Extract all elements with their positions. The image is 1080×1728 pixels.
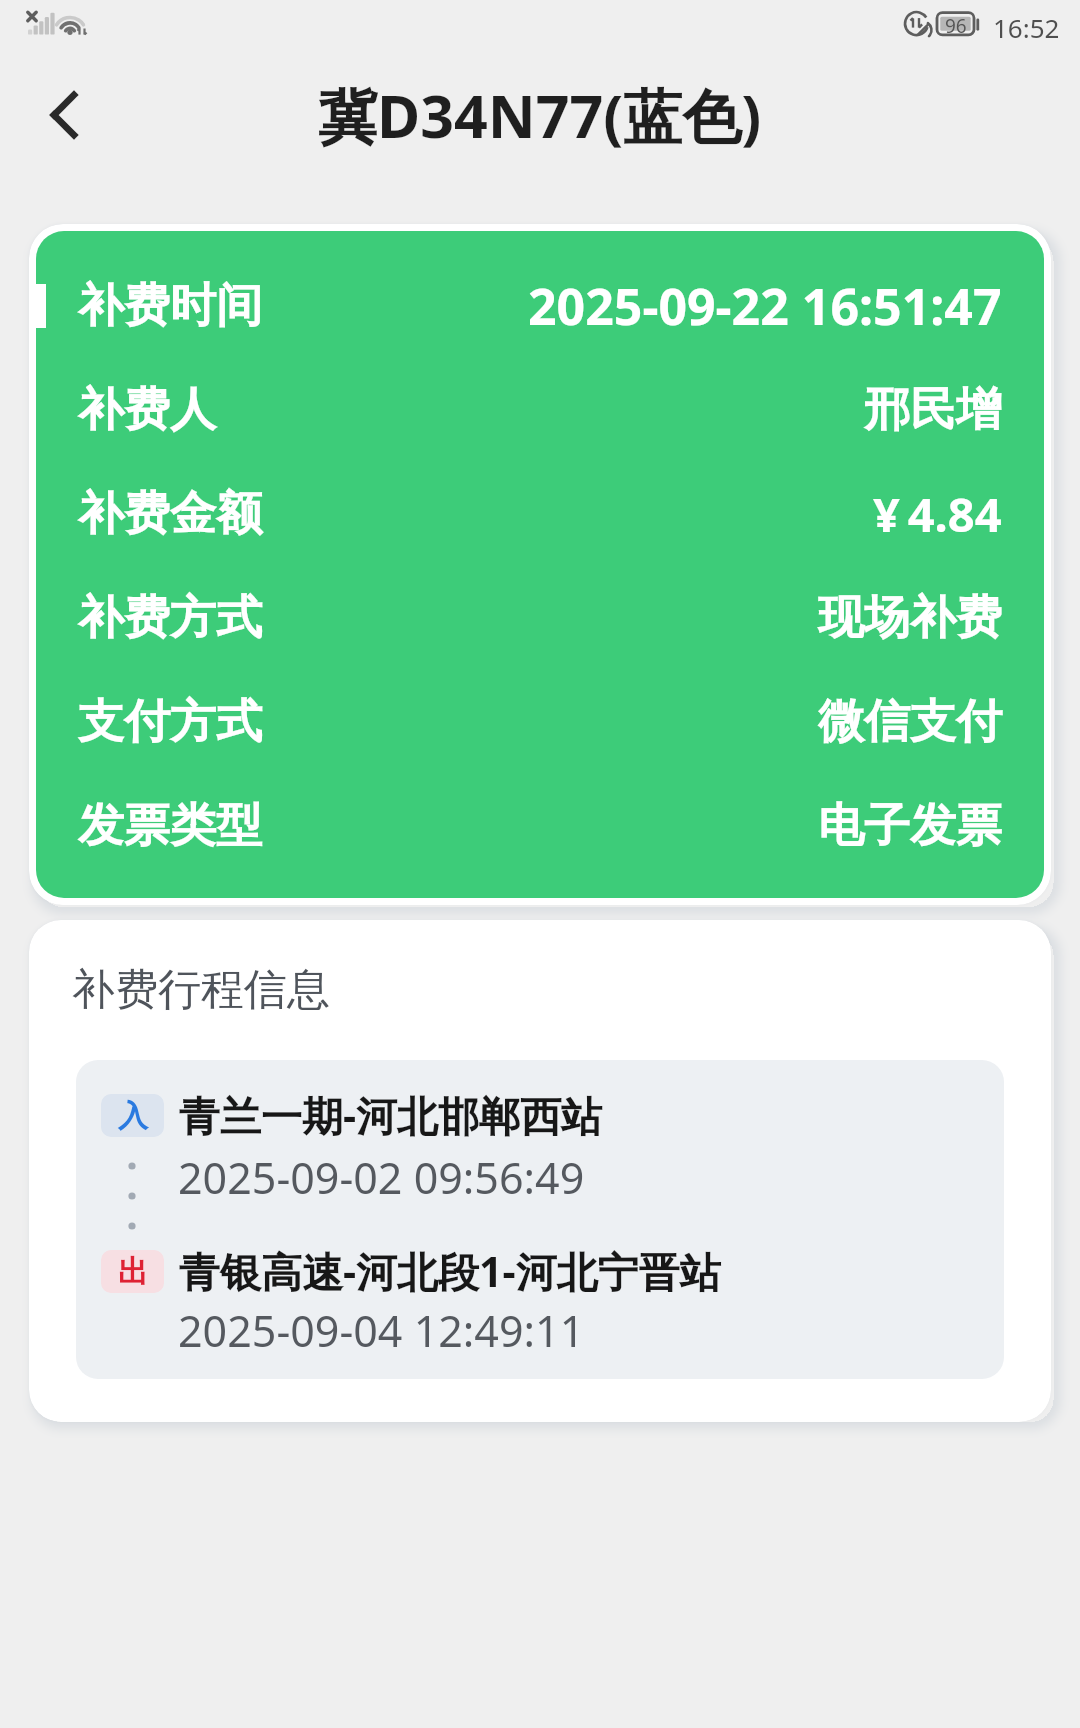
staticText: 16:52 bbox=[993, 10, 1060, 45]
staticText: 现场补费 bbox=[818, 589, 1002, 647]
staticText: 支付方式 bbox=[78, 693, 262, 751]
staticText: 邢民增 bbox=[864, 381, 1002, 439]
staticText: 补费金额 bbox=[78, 485, 262, 543]
button[interactable]: 入 bbox=[76, 1060, 1004, 1379]
staticText: 补费时间 bbox=[78, 277, 262, 335]
staticText: 入 bbox=[118, 1097, 148, 1135]
staticText: 青银高速-河北段1-河北宁晋站 bbox=[179, 1243, 721, 1299]
staticText: 2025-09-22 16:51:47 bbox=[528, 272, 1002, 340]
staticText: 补费方式 bbox=[78, 589, 262, 647]
staticText: 补费行程信息 bbox=[72, 963, 330, 1017]
staticText: 96 bbox=[945, 13, 967, 39]
staticText: 电子发票 bbox=[818, 797, 1002, 855]
staticText: 发票类型 bbox=[78, 797, 262, 855]
staticText: 2025-09-04 12:49:11 bbox=[178, 1301, 585, 1360]
button[interactable]: Back bbox=[18, 69, 110, 161]
staticText: 冀D34N77(蓝色) bbox=[318, 75, 762, 156]
staticText: 2025-09-02 09:56:49 bbox=[178, 1148, 585, 1207]
staticText: 补费人 bbox=[78, 381, 216, 439]
staticText: 青兰一期-河北邯郸西站 bbox=[179, 1087, 603, 1143]
staticText: ¥ 4.84 bbox=[873, 482, 1002, 546]
staticText: 出 bbox=[118, 1253, 148, 1291]
staticText: 微信支付 bbox=[818, 693, 1002, 751]
